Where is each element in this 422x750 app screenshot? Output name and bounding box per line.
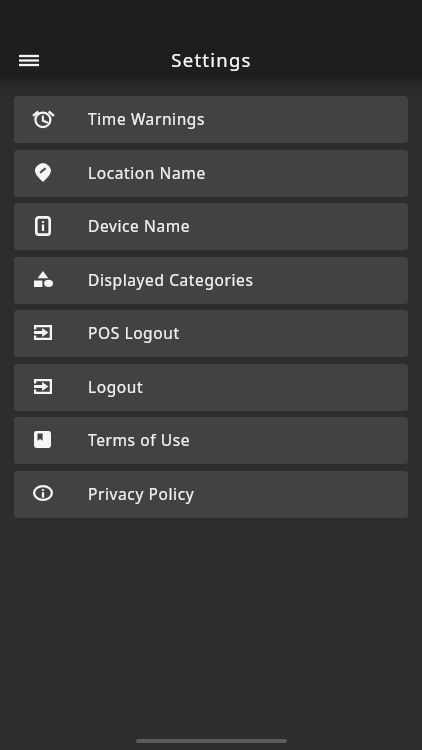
staticText: Displayed Categories	[88, 269, 254, 290]
staticText: POS Logout	[88, 322, 180, 343]
button[interactable]: Device Name	[14, 203, 408, 250]
button[interactable]: POS Logout	[14, 310, 408, 357]
staticText: Terms of Use	[88, 429, 191, 450]
staticText: Settings	[171, 47, 252, 72]
button[interactable]: Open navigation drawer	[1, 38, 57, 82]
staticText: Location Name	[88, 162, 206, 183]
staticText: Device Name	[88, 215, 191, 236]
button[interactable]: Time Warnings	[14, 96, 408, 143]
button[interactable]: Logout	[14, 364, 408, 411]
button[interactable]: Location Name	[14, 150, 408, 197]
staticText: Time Warnings	[88, 108, 205, 129]
staticText: Logout	[88, 376, 144, 397]
button[interactable]: Terms of Use	[14, 417, 408, 464]
button[interactable]: Privacy Policy	[14, 471, 408, 518]
button[interactable]: Displayed Categories	[14, 257, 408, 304]
staticText: Privacy Policy	[88, 483, 195, 504]
